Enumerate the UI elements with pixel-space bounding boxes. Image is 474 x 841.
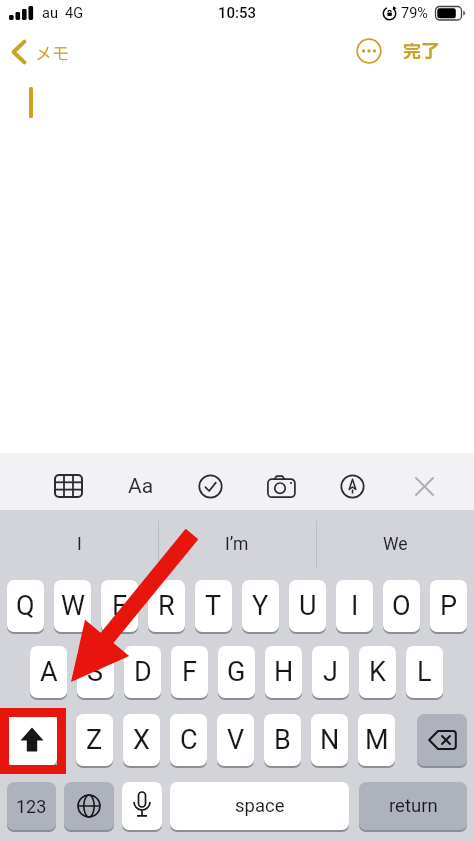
button[interactable] [122,782,162,830]
staticText: Y [252,590,269,622]
button[interactable]: H [265,646,302,698]
staticText: O [392,590,411,622]
button[interactable] [7,714,57,766]
button[interactable]: return [359,782,467,830]
staticText: We [383,534,408,555]
staticText: A [40,656,58,688]
staticText: B [274,724,291,756]
button[interactable]: E [101,580,138,632]
staticText: space [235,795,285,817]
staticText: P [440,590,458,622]
button[interactable]: Y [242,580,279,632]
button[interactable]: R [148,580,185,632]
button[interactable]: We [316,534,474,555]
staticText: メモ [35,42,69,67]
staticText: H [274,656,294,688]
button[interactable] [413,475,436,498]
staticText: M [365,724,389,756]
staticText: D [134,656,152,688]
staticText: au [42,5,58,22]
button[interactable]: K [359,646,396,698]
staticText: J [323,656,338,688]
staticText: N [320,724,340,756]
staticText: G [227,656,246,688]
button[interactable] [54,474,84,499]
button[interactable]: M [358,714,395,766]
button[interactable] [64,782,114,830]
button[interactable]: C [170,714,207,766]
staticText: I’m [225,534,249,555]
button[interactable]: U [289,580,326,632]
staticText: L [417,656,432,688]
staticText: 4G [65,5,84,22]
staticText: 10:53 [218,4,257,22]
button[interactable]: S [77,646,114,698]
staticText: T [205,590,222,622]
staticText: K [369,656,386,688]
button[interactable]: A [30,646,67,698]
button[interactable]: space [170,782,349,830]
button[interactable]: V [217,714,254,766]
staticText: R [158,590,175,622]
staticText: C [180,724,198,756]
button[interactable]: O [383,580,420,632]
staticText: V [227,724,245,756]
button[interactable] [198,474,223,499]
button[interactable]: G [218,646,255,698]
staticText: Q [16,590,35,622]
staticText: Aa [128,474,154,499]
staticText: W [61,590,85,622]
button[interactable]: X [123,714,160,766]
staticText: I [77,534,82,555]
button[interactable]: Q [7,580,44,632]
button[interactable]: Z [76,714,113,766]
staticText: I [351,590,359,622]
button[interactable] [340,474,365,499]
button[interactable] [8,38,32,66]
button[interactable]: 完了 [403,39,439,66]
staticText: E [112,590,128,622]
button[interactable]: N [311,714,348,766]
button[interactable]: W [54,580,91,632]
staticText: Z [86,724,103,756]
button[interactable]: I’m [158,534,316,555]
button[interactable]: I [336,580,373,632]
button[interactable]: L [406,646,443,698]
button[interactable]: Aa [128,474,160,500]
button[interactable]: F [171,646,208,698]
button[interactable]: I [0,534,158,555]
button[interactable] [356,38,382,64]
button[interactable]: D [124,646,161,698]
staticText: X [133,724,150,756]
button[interactable]: P [430,580,467,632]
button[interactable] [417,714,467,766]
button[interactable]: 123 [7,782,56,830]
staticText: return [389,795,438,817]
staticText: F [182,656,197,688]
button[interactable]: B [264,714,301,766]
button[interactable]: J [312,646,349,698]
staticText: U [299,590,317,622]
staticText: 123 [16,796,47,817]
staticText: 79% [401,5,428,22]
button[interactable] [267,475,296,498]
button[interactable]: T [195,580,232,632]
staticText: 完了 [403,39,439,66]
staticText: S [87,656,104,688]
